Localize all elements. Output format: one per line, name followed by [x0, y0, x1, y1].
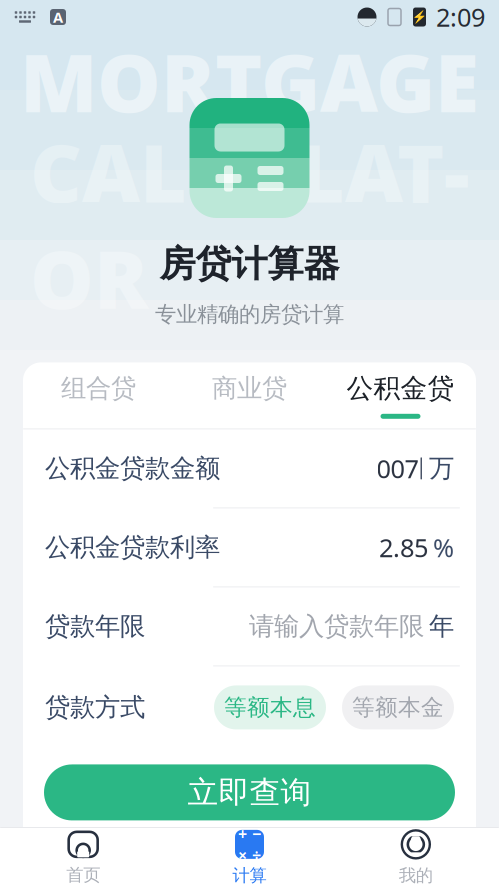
- staticText: 房贷计算器: [159, 242, 339, 286]
- staticText: 首页: [66, 864, 100, 886]
- button[interactable]: 等额本金: [342, 685, 454, 729]
- staticText: MORTGAGE: [20, 28, 479, 134]
- staticText: 公积金贷: [346, 372, 454, 405]
- button[interactable]: 商业贷: [174, 362, 325, 428]
- staticText: ÷: [252, 844, 261, 866]
- button[interactable]: 等额本息: [214, 685, 326, 729]
- staticText: +: [238, 823, 247, 844]
- staticText: A: [53, 7, 63, 27]
- staticText: 贷款年限: [45, 611, 145, 642]
- staticText: 商业贷: [212, 373, 287, 404]
- staticText: 2:09: [436, 0, 485, 34]
- staticText: 等额本息: [224, 693, 316, 721]
- staticText: 公积金贷款金额: [45, 453, 220, 484]
- staticText: 万: [429, 453, 454, 484]
- staticText: 请输入贷款年限: [249, 611, 424, 642]
- button[interactable]: 首页: [0, 828, 166, 888]
- staticText: 计算: [232, 865, 266, 886]
- staticText: 组合贷: [61, 373, 136, 404]
- button[interactable]: 立即查询: [44, 764, 455, 820]
- staticText: 2.85: [379, 531, 428, 564]
- staticText: 专业精确的房贷计算: [155, 301, 344, 327]
- button[interactable]: 组合贷: [23, 362, 174, 428]
- staticText: 立即查询: [187, 774, 311, 811]
- staticText: 公积金贷款利率: [45, 532, 220, 563]
- staticText: 贷款方式: [45, 692, 145, 723]
- staticText: 等额本金: [352, 693, 444, 721]
- staticText: 年: [429, 611, 454, 642]
- staticText: CALCULATOR: [30, 118, 469, 331]
- button[interactable]: 公积金贷: [325, 362, 476, 428]
- staticText: %: [433, 531, 454, 564]
- staticText: 007: [376, 452, 418, 485]
- staticText: ×: [238, 844, 247, 866]
- button[interactable]: 我的: [333, 828, 499, 888]
- staticText: 我的: [399, 865, 433, 886]
- button[interactable]: +: [166, 828, 333, 888]
- staticText: −: [252, 823, 261, 844]
- staticText: ⚡: [412, 10, 427, 24]
